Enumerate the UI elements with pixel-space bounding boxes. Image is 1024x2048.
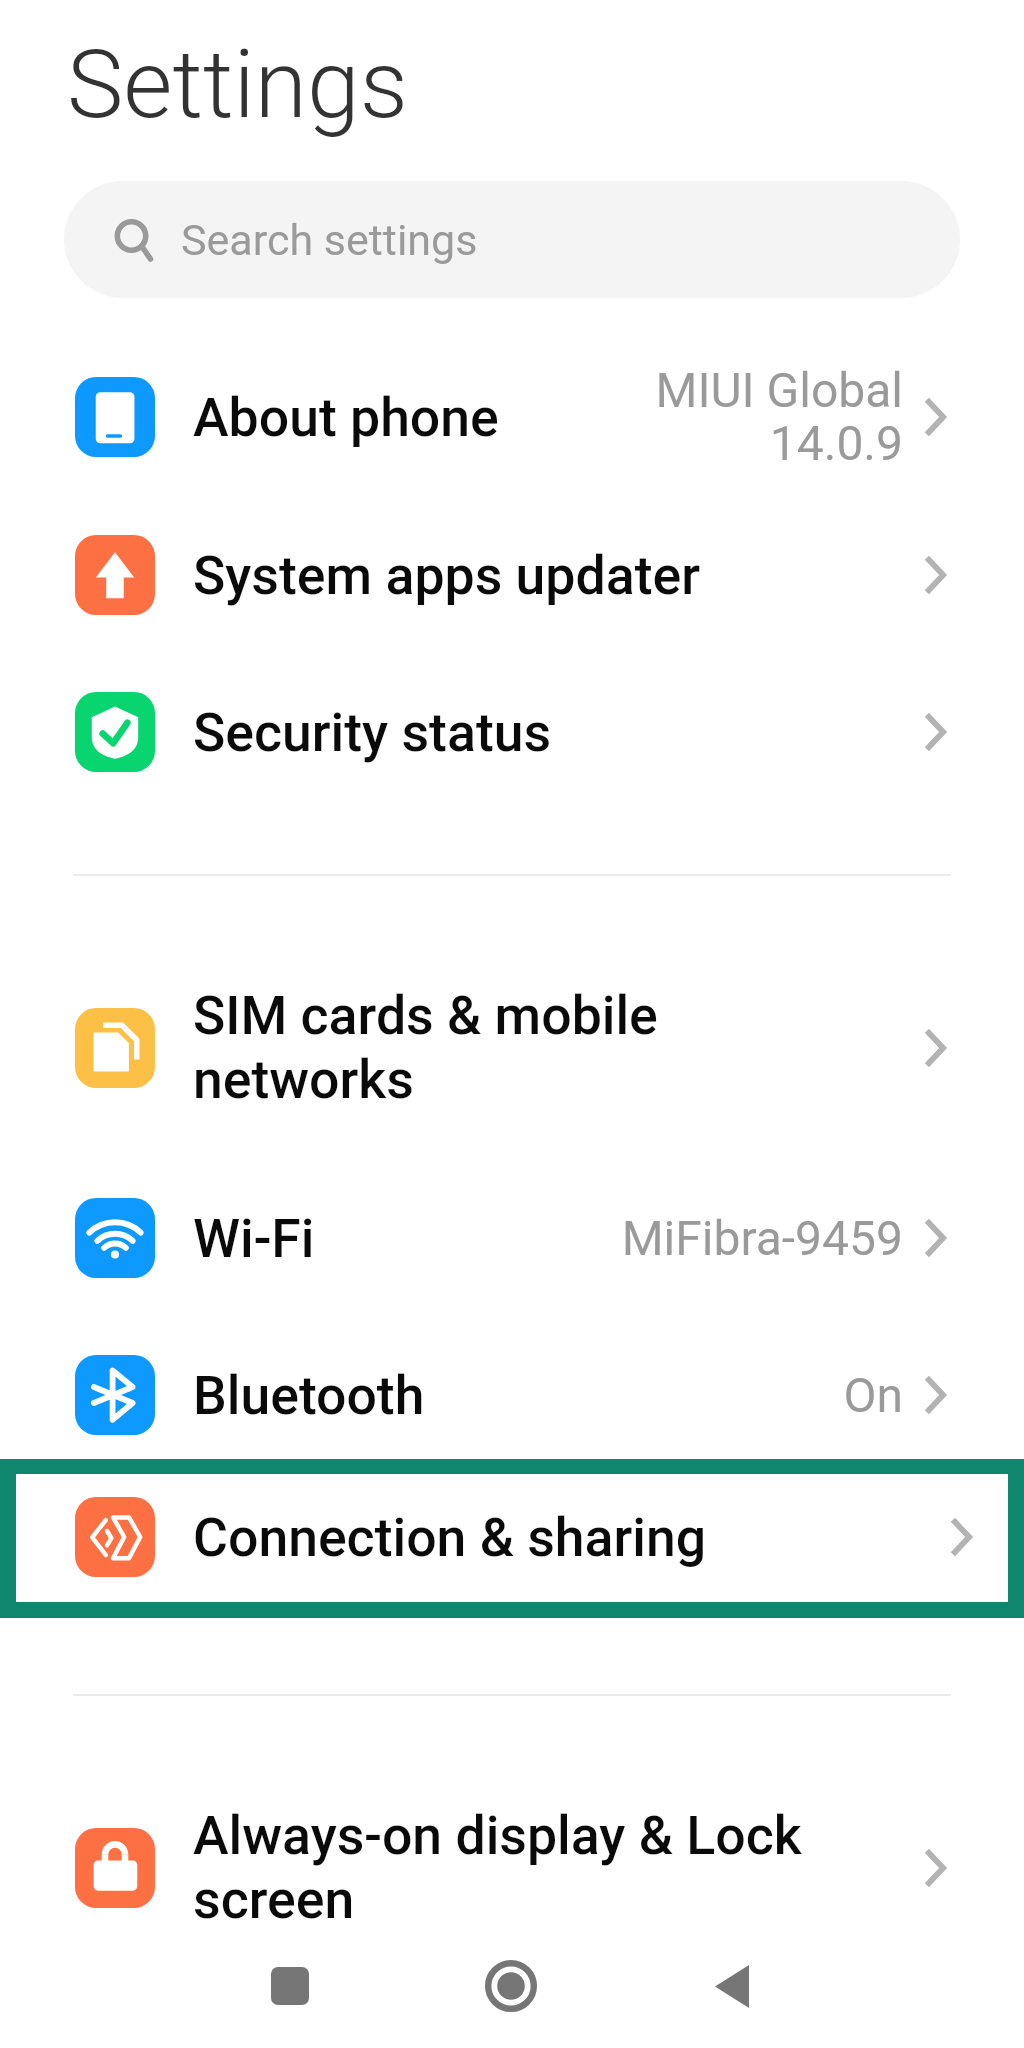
button[interactable]: Back [692, 1946, 772, 2026]
staticText: SIM cards & mobile networks [193, 984, 658, 1112]
staticText: On [843, 1367, 903, 1423]
button[interactable]: Always-on display & Lock screen [0, 1793, 1024, 1943]
button[interactable]: Bluetooth [0, 1320, 1024, 1470]
button[interactable]: SIM cards & mobile networks [0, 973, 1024, 1123]
button[interactable]: Wi-Fi [0, 1163, 1024, 1313]
staticText: Bluetooth [193, 1364, 425, 1427]
staticText: Connection & sharing [193, 1506, 707, 1569]
staticText: System apps updater [193, 544, 700, 607]
staticText: Wi-Fi [193, 1207, 315, 1270]
staticText: About phone [193, 386, 499, 449]
button[interactable]: Home [471, 1946, 551, 2026]
button[interactable]: Search settings [64, 181, 960, 298]
button[interactable]: Connection & sharing [0, 1462, 1024, 1612]
button[interactable]: Recent apps [250, 1946, 330, 2026]
button[interactable]: About phone [0, 342, 1024, 492]
button[interactable]: System apps updater [0, 500, 1024, 650]
staticText: Always-on display & Lock screen [193, 1804, 802, 1932]
button[interactable]: Security status [0, 657, 1024, 807]
staticText: MiFibra-9459 [621, 1210, 903, 1266]
staticText: Settings [67, 29, 408, 140]
staticText: Search settings [181, 215, 478, 265]
staticText: Security status [193, 701, 552, 764]
staticText: MIUI Global 14.0.9 [655, 362, 903, 472]
